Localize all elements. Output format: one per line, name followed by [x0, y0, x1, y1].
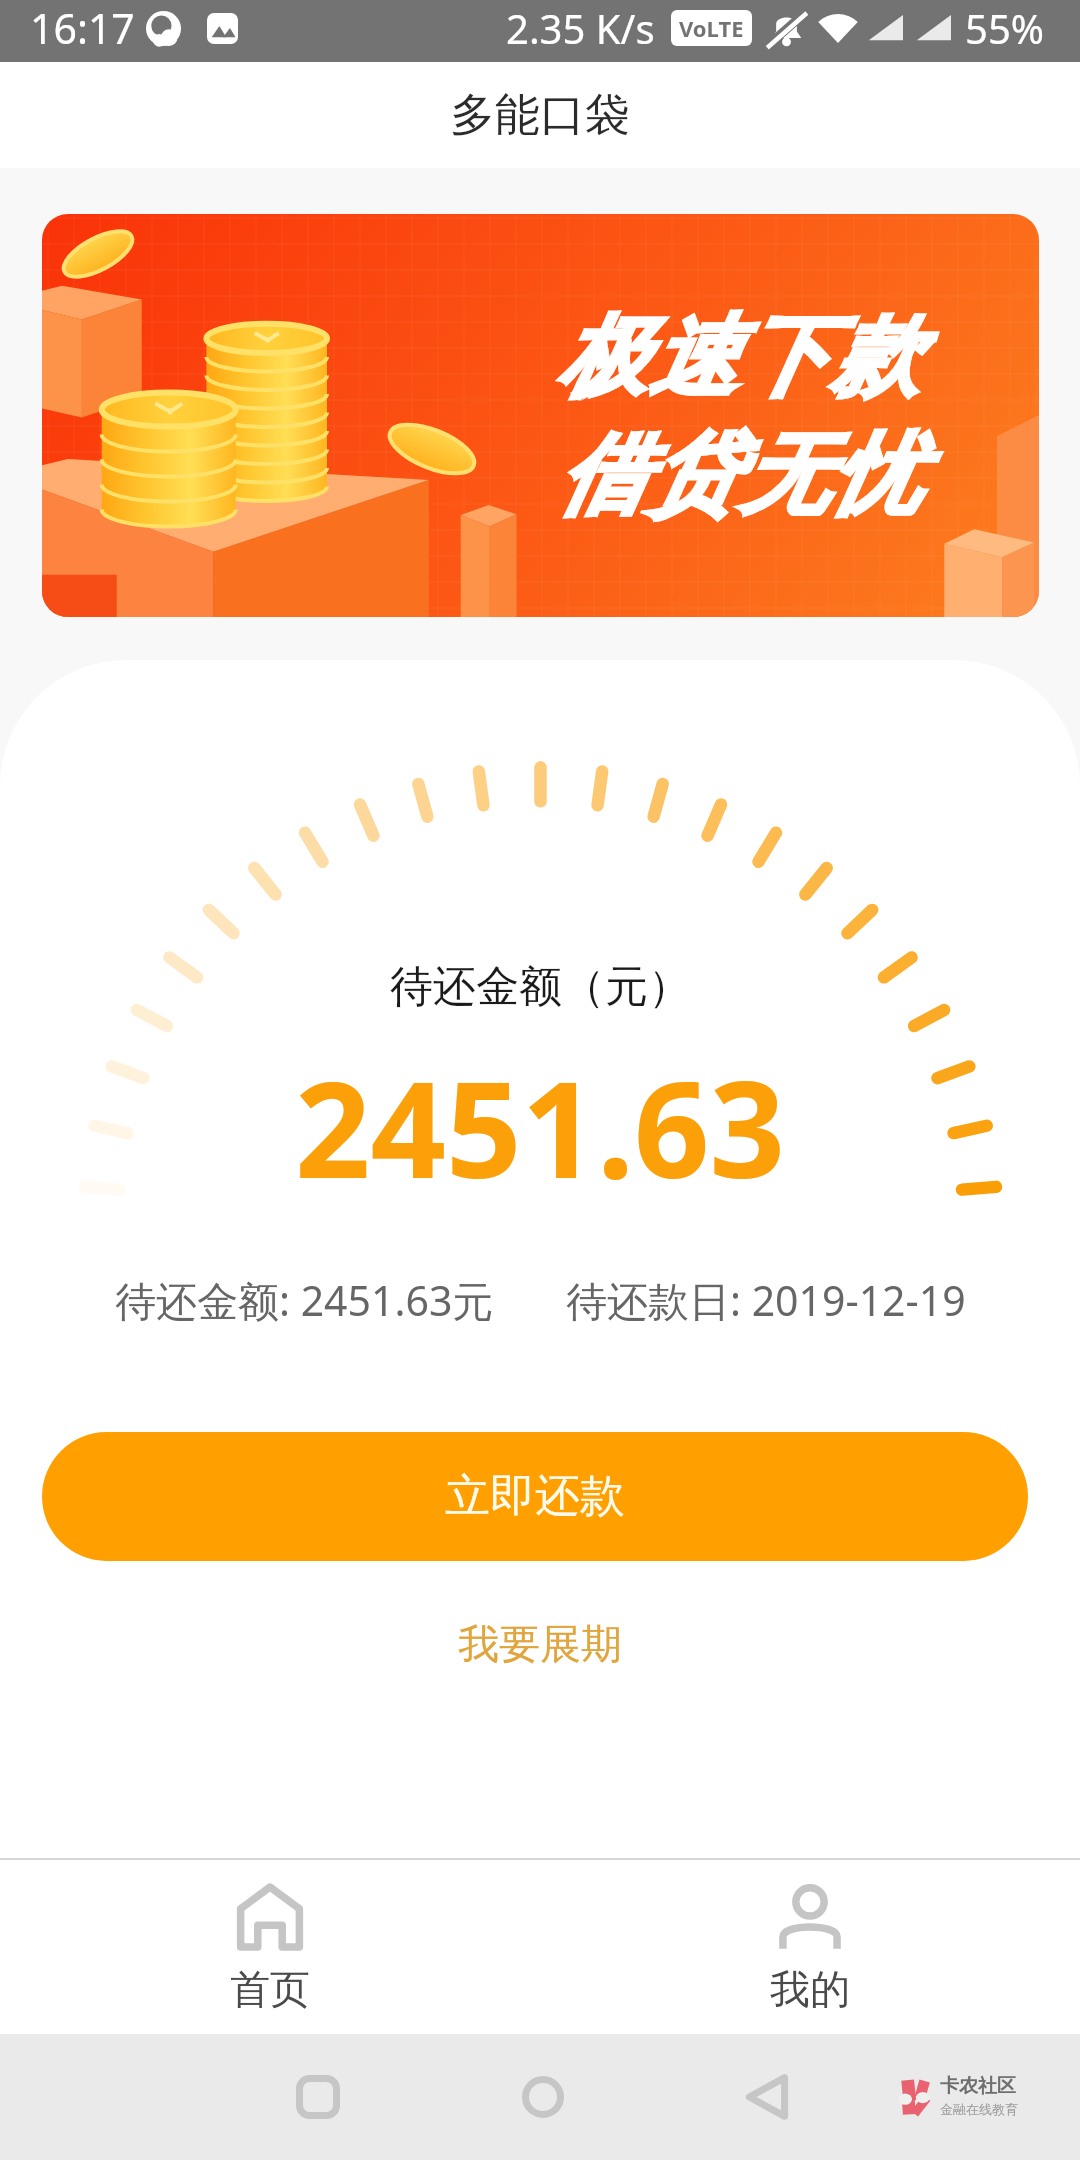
staticText: 我的 [770, 1964, 850, 2014]
staticText: 金融在线教育 [940, 2101, 1018, 2117]
button[interactable]: 首页 [0, 1858, 540, 2028]
staticText: 极速下款 [556, 302, 920, 413]
button[interactable]: 立即还款 [42, 1432, 1028, 1561]
staticText: 立即还款 [445, 1468, 625, 1525]
staticText: 卡农社区 [940, 2074, 1016, 2098]
button[interactable]: Back [704, 2034, 830, 2160]
button[interactable]: 我的 [540, 1858, 1080, 2028]
staticText: VoLTE [679, 13, 744, 43]
staticText: 55% [965, 1, 1044, 55]
button[interactable]: Recents [255, 2034, 381, 2160]
staticText: 待还金额（元） [390, 960, 691, 1014]
staticText: 待还款日: 2019-12-19 [566, 1272, 966, 1328]
button[interactable]: 我要展期 [434, 1609, 646, 1681]
staticText: 16:17 [30, 0, 135, 56]
staticText: 多能口袋 [450, 87, 630, 144]
button[interactable]: 极速下款 借贷无忧 banner [42, 214, 1039, 617]
staticText: 2451.63 [295, 1037, 786, 1217]
staticText: 首页 [230, 1964, 310, 2014]
button[interactable]: Home [480, 2034, 606, 2160]
staticText: 待还金额: 2451.63元 [115, 1272, 494, 1328]
staticText: 借贷无忧 [556, 420, 920, 531]
staticText: 我要展期 [458, 1619, 622, 1671]
staticText: 2.35 K/s [506, 1, 655, 55]
